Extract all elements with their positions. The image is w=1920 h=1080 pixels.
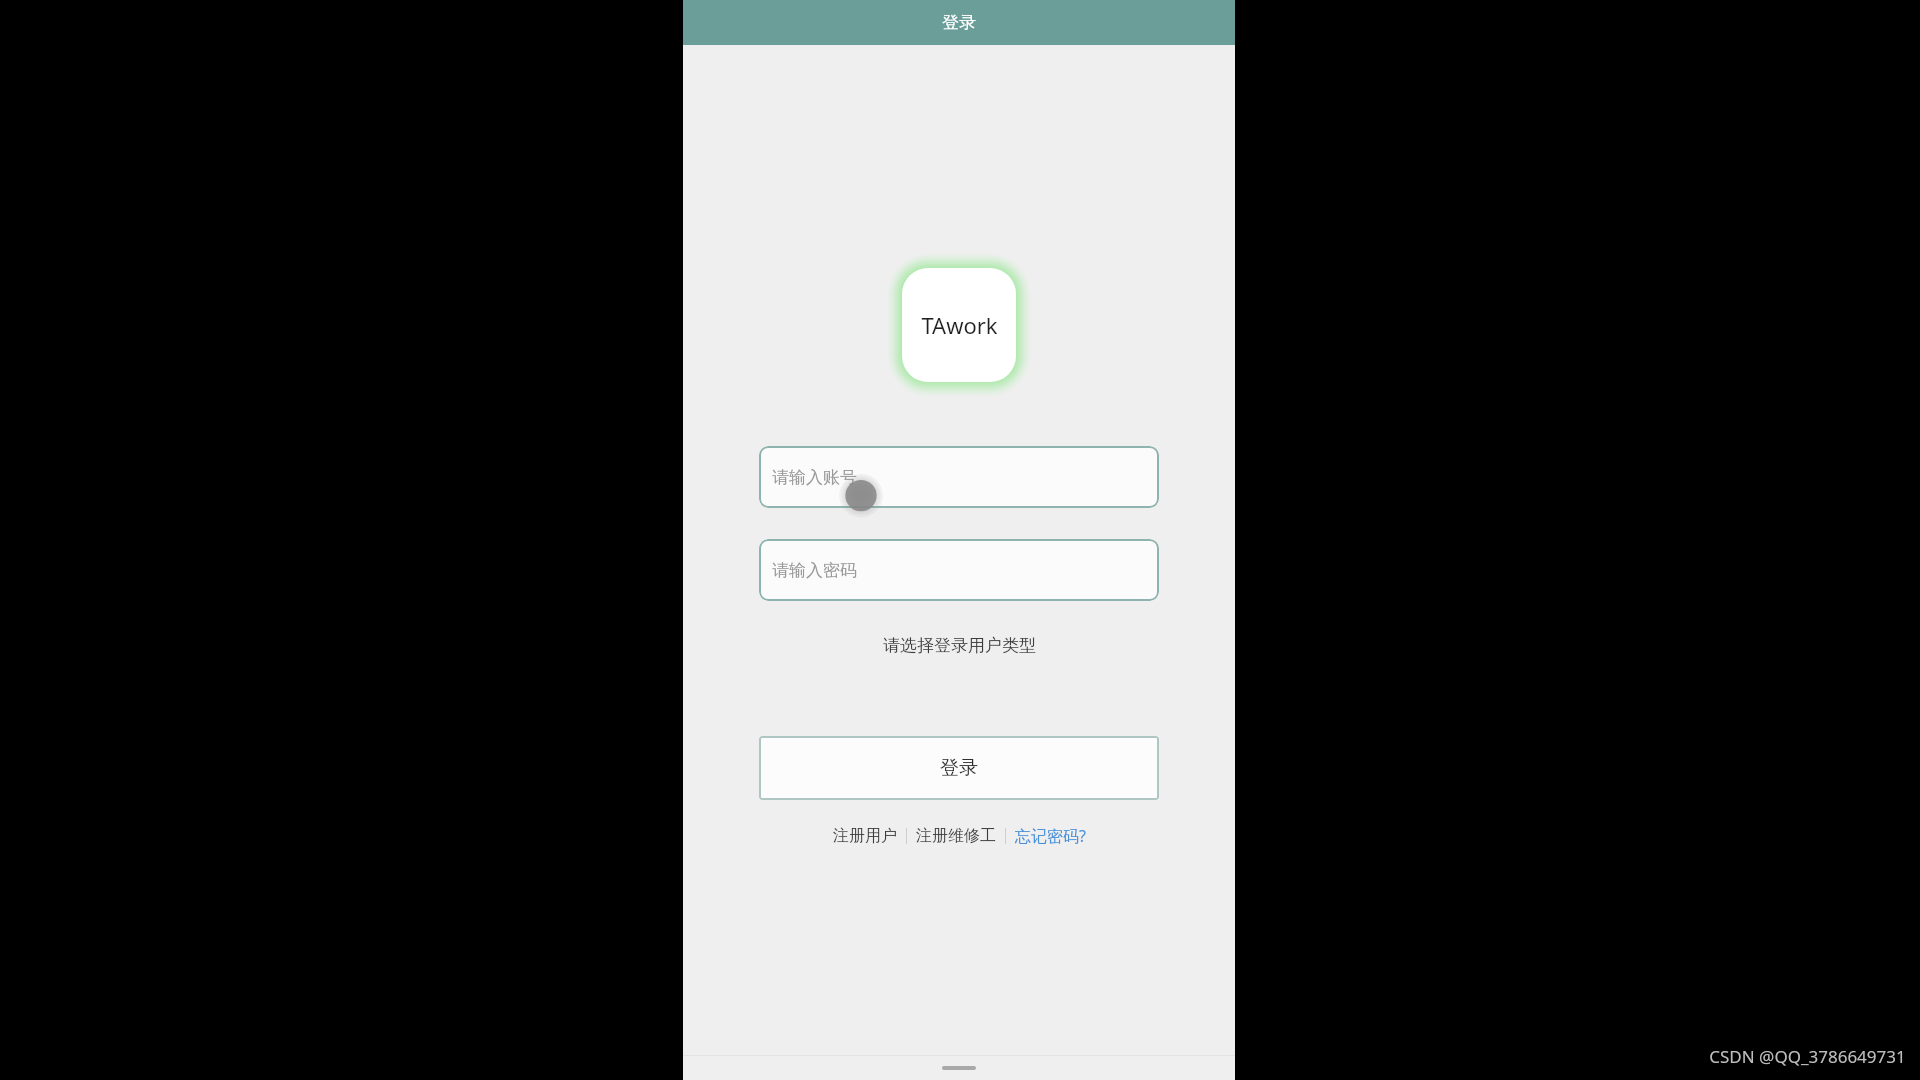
button[interactable]: 注册用户 <box>830 823 900 849</box>
staticText: 注册维修工 <box>916 826 996 846</box>
button[interactable]: TAwork <box>902 268 1016 382</box>
staticText: 请输入密码 <box>772 560 857 581</box>
staticText: TAwork <box>921 310 998 340</box>
button[interactable]: 请输入密码 <box>759 539 1159 601</box>
button[interactable]: 注册维修工 <box>913 823 999 849</box>
button[interactable]: 请输入账号 <box>759 446 1159 508</box>
button[interactable]: 忘记密码? <box>1012 822 1089 850</box>
button[interactable]: Home <box>942 1066 976 1070</box>
staticText: 登录 <box>942 12 976 33</box>
staticText: 登录 <box>940 756 978 780</box>
staticText: 注册用户 <box>833 826 897 846</box>
button[interactable]: 登录 <box>759 736 1159 800</box>
staticText: 忘记密码? <box>1015 825 1086 847</box>
staticText: CSDN @QQ_3786649731 <box>1709 1045 1906 1068</box>
staticText: 请输入账号 <box>772 467 857 488</box>
staticText: 请选择登录用户类型 <box>883 635 1036 656</box>
